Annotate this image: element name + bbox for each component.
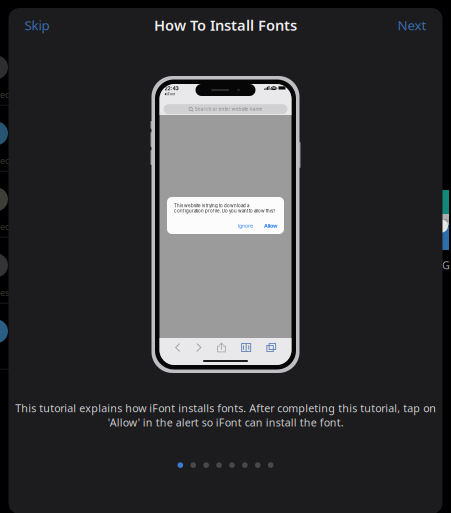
- staticText: ec: [0, 220, 9, 233]
- staticText: Ignore: [238, 222, 253, 229]
- staticText: This tutorial explains how iFont install…: [15, 401, 436, 429]
- staticText: iFont: [167, 92, 175, 96]
- staticText: 22:43: [164, 85, 178, 91]
- button[interactable]: Skip: [8, 8, 65, 42]
- staticText: This website is trying to download a con…: [174, 203, 275, 214]
- staticText: Allow: [264, 222, 277, 229]
- staticText: G: [442, 258, 450, 272]
- staticText: ec: [0, 88, 9, 101]
- staticText: Skip: [24, 16, 49, 34]
- staticText: Next: [397, 16, 426, 34]
- staticText: How To Install Fonts: [154, 15, 297, 35]
- button[interactable]: Next: [381, 8, 442, 42]
- staticText: ec: [0, 154, 9, 167]
- staticText: es: [0, 286, 9, 299]
- staticText: Search or enter website name: [195, 106, 263, 112]
